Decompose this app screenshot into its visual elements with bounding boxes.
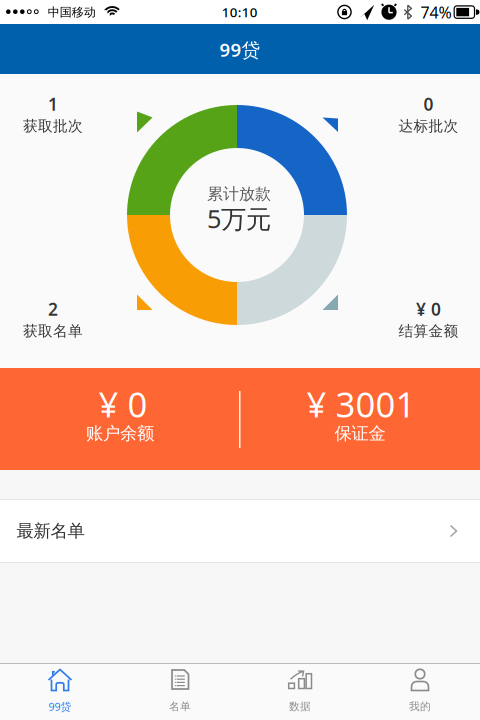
button[interactable]: 数据 [240, 663, 360, 720]
staticText: 名单 [169, 700, 191, 713]
staticText: 账户余额 [86, 423, 154, 444]
staticText: 数据 [289, 700, 311, 713]
staticText: 结算金额 [398, 322, 458, 340]
staticText: ¥ 0 [416, 297, 441, 320]
button[interactable]: 名单 [120, 663, 240, 720]
staticText: 0 [423, 92, 433, 115]
staticText: 我的 [409, 700, 431, 713]
staticText: 74% [420, 2, 451, 23]
staticText: 达标批次 [398, 117, 458, 135]
staticText: 2 [48, 297, 58, 320]
button[interactable]: 99贷 [0, 663, 120, 720]
staticText: 最新名单 [16, 520, 84, 542]
staticText: 中国移动 [48, 5, 96, 19]
staticText: 累计放款 [207, 184, 271, 204]
staticText: 99贷 [48, 699, 71, 714]
button[interactable]: 我的 [360, 663, 480, 720]
button[interactable]: ¥ 0 [0, 368, 240, 470]
staticText: 10:10 [222, 3, 258, 21]
staticText: 保证金 [334, 423, 385, 444]
staticText: 获取名单 [23, 322, 83, 340]
staticText: 1 [48, 92, 58, 115]
button[interactable]: ¥ 3001 [240, 368, 480, 470]
staticText: 5万元 [207, 202, 271, 235]
staticText: 99贷 [219, 37, 260, 62]
staticText: ¥ 0 [98, 381, 147, 427]
staticText: 获取批次 [23, 117, 83, 135]
staticText: ¥ 3001 [306, 381, 415, 427]
button[interactable]: 最新名单 [0, 500, 480, 562]
